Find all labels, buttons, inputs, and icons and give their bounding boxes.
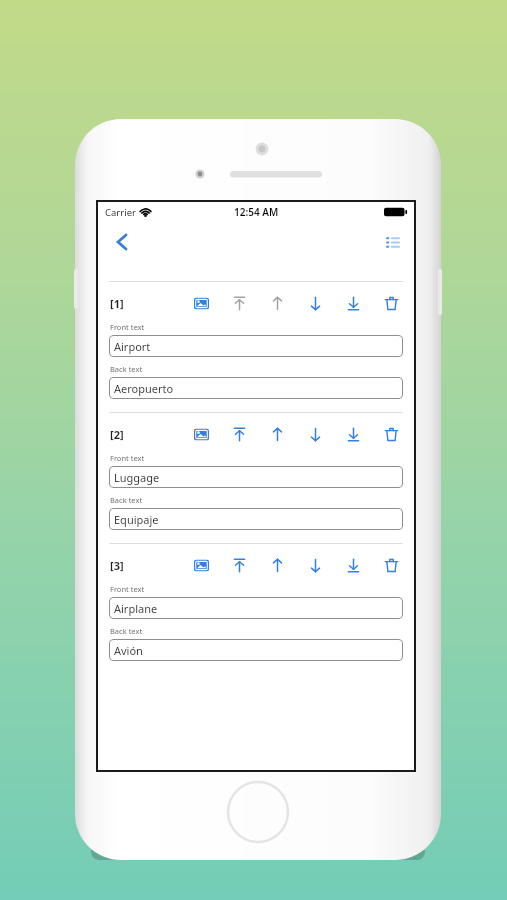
staticText: Back text (110, 495, 143, 505)
staticText: Back text (110, 364, 143, 374)
button[interactable]: Move to bottom (343, 424, 364, 445)
staticText: Front text (110, 453, 145, 463)
button[interactable]: Move to bottom (343, 555, 364, 576)
staticText: Front text (110, 322, 145, 332)
button[interactable]: Equipaje (109, 508, 403, 530)
button[interactable]: Move down (305, 424, 326, 445)
button[interactable]: Airplane (109, 597, 403, 619)
button[interactable]: Luggage (109, 466, 403, 488)
staticText: [3] (110, 558, 124, 573)
staticText: 12:54 AM (234, 205, 279, 219)
button[interactable]: Avión (109, 639, 403, 661)
button[interactable]: Add image (191, 424, 212, 445)
button[interactable]: Move to top (229, 293, 250, 314)
button[interactable]: Move to top (229, 424, 250, 445)
button[interactable]: Move down (305, 293, 326, 314)
button[interactable]: Menu (380, 230, 406, 256)
button[interactable]: Add image (191, 555, 212, 576)
staticText: [1] (110, 296, 124, 311)
staticText: Avión (114, 643, 143, 658)
button[interactable]: Move up (267, 293, 288, 314)
staticText: Luggage (114, 470, 160, 485)
staticText: Airplane (114, 601, 158, 616)
button[interactable]: Move to top (229, 555, 250, 576)
button[interactable]: Move up (267, 424, 288, 445)
staticText: Carrier (105, 206, 136, 219)
button[interactable]: Delete (381, 424, 402, 445)
button[interactable]: Delete (381, 293, 402, 314)
button[interactable]: Back (105, 225, 139, 259)
button[interactable]: Add image (191, 293, 212, 314)
staticText: [2] (110, 427, 124, 442)
staticText: Airport (114, 339, 151, 354)
staticText: Back text (110, 626, 143, 636)
staticText: Equipaje (114, 512, 159, 527)
button[interactable]: Delete (381, 555, 402, 576)
button[interactable]: Airport (109, 335, 403, 357)
staticText: Front text (110, 584, 145, 594)
staticText: Aeropuerto (114, 381, 174, 396)
button[interactable]: Move to bottom (343, 293, 364, 314)
button[interactable]: Move down (305, 555, 326, 576)
button[interactable]: Aeropuerto (109, 377, 403, 399)
button[interactable]: Move up (267, 555, 288, 576)
